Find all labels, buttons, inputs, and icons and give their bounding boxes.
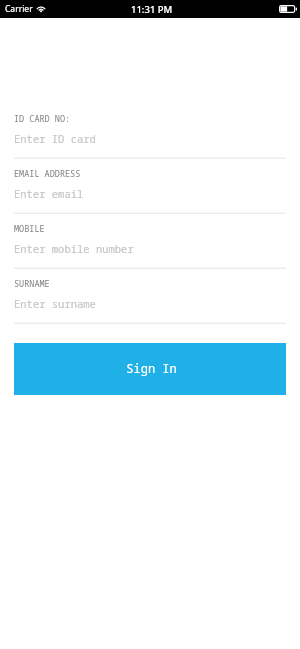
staticText: ID CARD NO: — [14, 113, 71, 125]
button[interactable]: EMAIL ADDRESS — [14, 159, 286, 214]
other: Wi-Fi signal — [36, 5, 46, 13]
button[interactable]: MOBILE — [14, 214, 286, 269]
staticText: Carrier — [5, 3, 33, 15]
button[interactable]: ID CARD NO: — [14, 104, 286, 159]
staticText: 11:31 PM — [131, 3, 173, 16]
staticText: Enter email — [14, 187, 84, 201]
button[interactable]: Sign In — [14, 343, 286, 395]
staticText: Enter surname — [14, 297, 96, 311]
staticText: SURNAME — [14, 278, 50, 290]
staticText: Enter ID card — [14, 132, 96, 146]
staticText: Enter mobile number — [14, 242, 134, 256]
staticText: EMAIL ADDRESS — [14, 168, 81, 180]
staticText: Sign In — [126, 360, 177, 376]
button[interactable]: SURNAME — [14, 269, 286, 324]
other: Battery half full — [279, 5, 297, 13]
staticText: MOBILE — [14, 223, 45, 235]
